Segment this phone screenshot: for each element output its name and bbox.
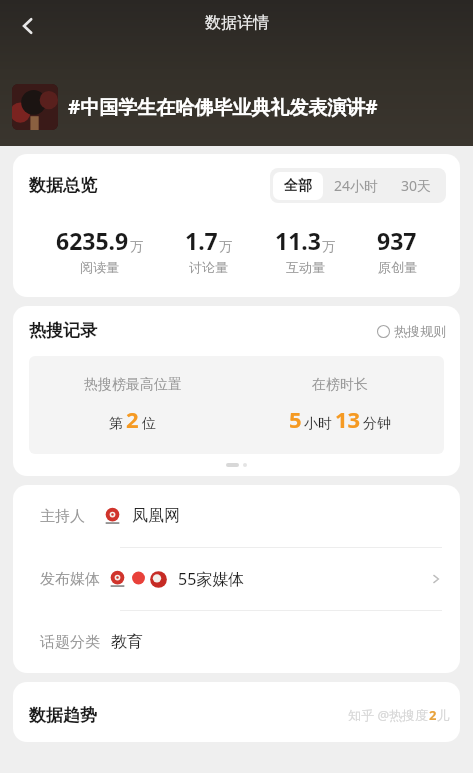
staticText: 2 — [126, 404, 139, 434]
staticText: 1.7 — [185, 225, 218, 256]
staticText: 讨论量 — [189, 259, 228, 275]
staticText: 万 — [322, 238, 335, 254]
staticText: 937 — [377, 225, 417, 256]
button[interactable]: 全部 — [273, 172, 323, 200]
staticText: 热搜规则 — [394, 323, 446, 339]
button[interactable]: 24小时 — [323, 171, 390, 200]
button[interactable]: 话题分类 — [13, 611, 460, 673]
staticText: 在榜时长 — [312, 376, 368, 394]
staticText: 热搜榜最高位置 — [84, 376, 182, 394]
staticText: 24小时 — [334, 176, 379, 195]
staticText: 知乎 @热搜度 — [348, 706, 429, 724]
staticText: #中国学生在哈佛毕业典礼发表演讲# — [68, 94, 473, 120]
staticText: 数据趋势 — [29, 705, 97, 726]
button[interactable]: 主持人 — [13, 485, 460, 547]
button[interactable]: 发布媒体 — [13, 548, 460, 610]
staticText: 万 — [130, 238, 143, 254]
staticText: 发布媒体 — [40, 570, 100, 589]
staticText: 6235.9 — [56, 225, 129, 256]
staticText: 原创量 — [378, 259, 417, 275]
staticText: 11.3 — [275, 225, 321, 256]
staticText: 13 — [335, 404, 361, 434]
staticText: 小时 — [304, 415, 332, 433]
staticText: 位 — [142, 415, 156, 433]
staticText: 话题分类 — [40, 633, 100, 652]
staticText: 阅读量 — [80, 259, 119, 275]
staticText: 数据总览 — [29, 175, 97, 196]
button[interactable]: 30天 — [390, 171, 443, 200]
button[interactable]: 热搜规则 — [377, 323, 446, 339]
staticText: 30天 — [401, 176, 432, 195]
staticText: 55家媒体 — [178, 568, 245, 590]
staticText: 主持人 — [40, 507, 85, 526]
staticText: 热搜记录 — [29, 320, 97, 341]
staticText: 5 — [289, 404, 302, 434]
staticText: 互动量 — [286, 259, 325, 275]
staticText: 2 — [429, 706, 437, 724]
staticText: 全部 — [284, 177, 312, 195]
staticText: 万 — [219, 238, 232, 254]
staticText: 数据详情 — [205, 13, 269, 33]
staticText: 凤凰网 — [132, 506, 180, 526]
staticText: 第 — [109, 415, 123, 433]
staticText: 教育 — [111, 632, 143, 652]
staticText: 儿 — [437, 707, 450, 723]
button[interactable]: Back — [8, 6, 48, 46]
staticText: 分钟 — [363, 415, 391, 433]
